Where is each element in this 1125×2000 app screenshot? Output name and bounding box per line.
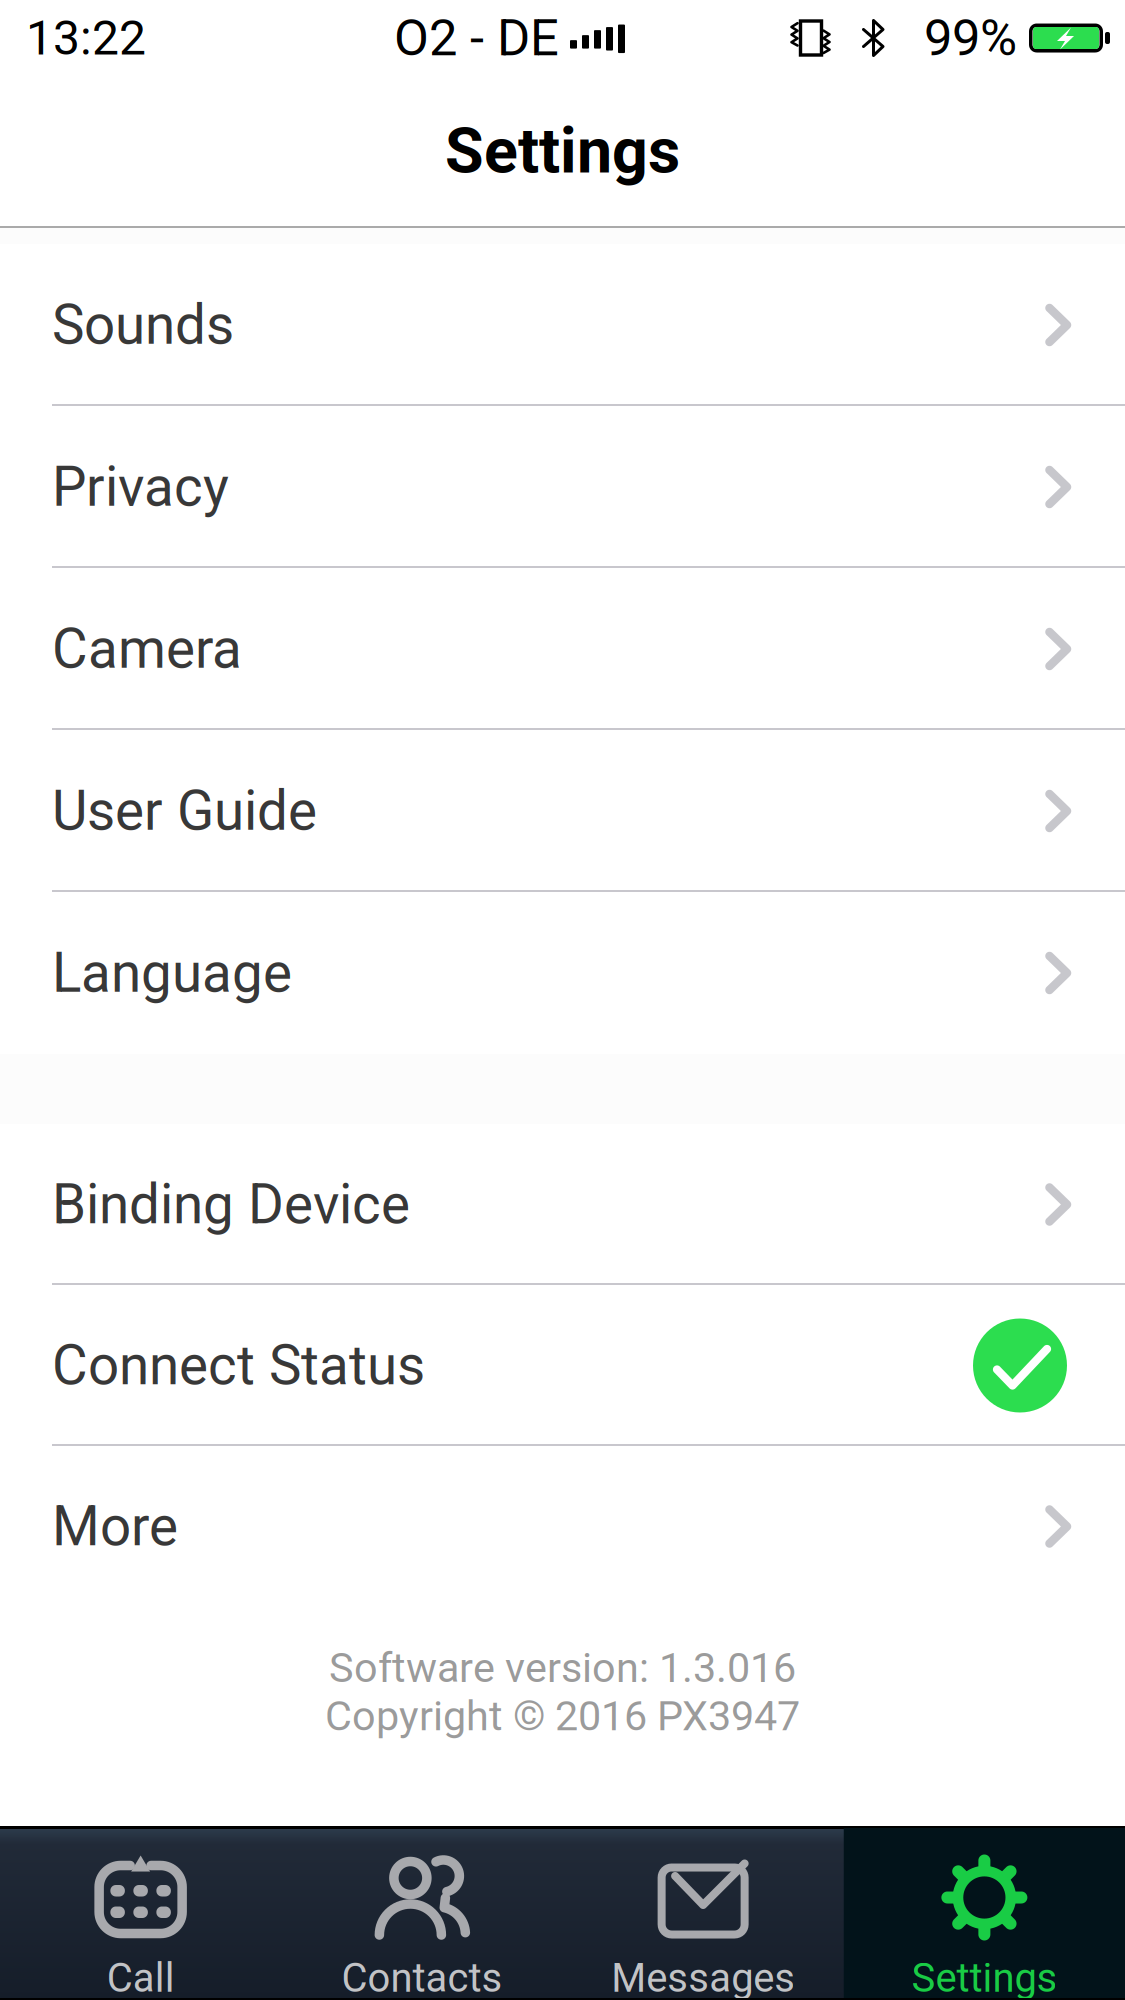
staticText: 99% — [924, 8, 1017, 68]
button[interactable]: Connect Status — [0, 1285, 1125, 1446]
staticText: More — [52, 1494, 178, 1559]
button[interactable]: Camera — [0, 568, 1125, 730]
staticText: Camera — [52, 617, 242, 681]
staticText: Connect Status — [52, 1333, 425, 1398]
staticText: Call — [107, 1955, 175, 2000]
button[interactable]: User Guide — [0, 730, 1125, 892]
staticText: Privacy — [52, 455, 229, 519]
button[interactable]: Binding Device — [0, 1124, 1125, 1285]
staticText: Language — [52, 941, 292, 1005]
button[interactable]: Language — [0, 892, 1125, 1054]
staticText: O2 - DE — [394, 8, 559, 68]
button[interactable]: Settings — [844, 1828, 1125, 1999]
staticText: Messages — [611, 1955, 795, 2000]
button[interactable]: Call — [0, 1828, 281, 1999]
button[interactable]: Messages — [562, 1828, 844, 1999]
button[interactable]: Privacy — [0, 406, 1125, 568]
staticText: Copyright © 2016 PX3947 — [325, 1692, 800, 1740]
staticText: Contacts — [341, 1955, 502, 2000]
button[interactable]: More — [0, 1446, 1125, 1607]
staticText: Software version: 1.3.016 — [329, 1644, 796, 1692]
staticText: Binding Device — [52, 1172, 410, 1237]
button[interactable]: Contacts — [281, 1828, 562, 1999]
staticText: Settings — [445, 114, 680, 188]
staticText: User Guide — [52, 779, 317, 843]
staticText: 13:22 — [26, 10, 146, 66]
button[interactable]: Sounds — [0, 244, 1125, 406]
staticText: Settings — [911, 1955, 1057, 2000]
staticText: Sounds — [52, 293, 234, 357]
